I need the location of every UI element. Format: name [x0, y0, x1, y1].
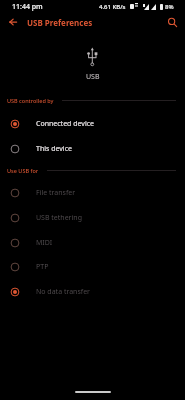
- staticText: Use USB for: [7, 167, 39, 174]
- staticText: USB Preferences: [27, 17, 93, 28]
- staticText: MIDI: [36, 238, 53, 248]
- staticText: USB controlled by: [7, 97, 54, 104]
- button[interactable]: This device: [0, 137, 185, 161]
- button[interactable]: No data transfer: [0, 280, 185, 304]
- staticText: Connected device: [36, 119, 95, 129]
- staticText: 8%: [165, 3, 174, 11]
- staticText: This device: [36, 144, 72, 154]
- button[interactable]: PTP: [0, 255, 185, 279]
- button[interactable]: Back: [2, 11, 24, 33]
- staticText: File transfer: [36, 188, 76, 198]
- staticText: No data transfer: [36, 287, 91, 297]
- button[interactable]: MIDI: [0, 231, 185, 255]
- staticText: 11:44 pm: [12, 2, 43, 12]
- staticText: PTP: [36, 262, 49, 272]
- button[interactable]: Search: [161, 11, 183, 33]
- staticText: USB tethering: [36, 213, 82, 223]
- staticText: 4.61 KB/s: [99, 3, 126, 11]
- button[interactable]: USB tethering: [0, 206, 185, 230]
- button[interactable]: Connected device: [0, 112, 185, 136]
- button[interactable]: File transfer: [0, 181, 185, 205]
- staticText: USB: [86, 72, 100, 82]
